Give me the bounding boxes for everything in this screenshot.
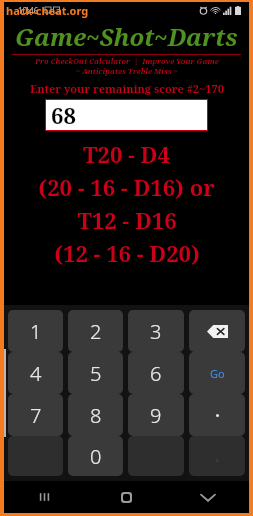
staticText: Enter your remaining score #2~170 [30,81,224,96]
staticText: Game~Shot~Darts [15,20,238,53]
staticText: hack-cheat.org [6,3,89,18]
staticText: ~ Anticipates Treble Miss ~ [76,66,178,76]
button[interactable]: Back [167,481,249,513]
button[interactable]: Home [85,481,167,513]
staticText: (12 - 16 - D20) [54,238,200,268]
staticText: 6 [150,360,162,387]
button[interactable]: 9 [128,394,184,436]
staticText: (20 - 16 - D16) or [38,172,215,202]
button[interactable]: 0 [68,436,123,476]
staticText: Go [210,366,225,381]
staticText: T12 - D16 [77,205,177,235]
staticText: 8 [90,402,102,429]
button[interactable]: Decimal point [189,394,245,436]
button[interactable]: 68 [46,100,207,130]
staticText: 68 [51,100,76,130]
staticText: 1 [30,318,42,345]
button[interactable]: 2 [68,310,123,352]
button[interactable]: 4 [8,352,63,394]
staticText: 2 [90,318,102,345]
staticText: Pro CheckOut Calculator | Improve Your G… [35,56,219,66]
staticText: 3 [150,318,162,345]
button[interactable]: Recent apps [4,481,85,513]
staticText: 7 [30,402,42,429]
button[interactable]: 5 [68,352,123,394]
button[interactable]: 8 [68,394,123,436]
staticText: 10:46 [18,5,39,16]
button[interactable]: 6 [128,352,184,394]
button[interactable]: 3 [128,310,184,352]
staticText: T20 - D4 [83,139,170,169]
button[interactable]: 1 [8,310,63,352]
staticText: 0 [90,443,102,470]
staticText: 4 [30,360,42,387]
staticText: , [216,449,219,464]
button[interactable]: 7 [8,394,63,436]
button[interactable]: Go [189,352,245,394]
button[interactable]: Backspace [189,310,245,352]
staticText: 5 [90,360,102,387]
staticText: 9 [150,402,162,429]
